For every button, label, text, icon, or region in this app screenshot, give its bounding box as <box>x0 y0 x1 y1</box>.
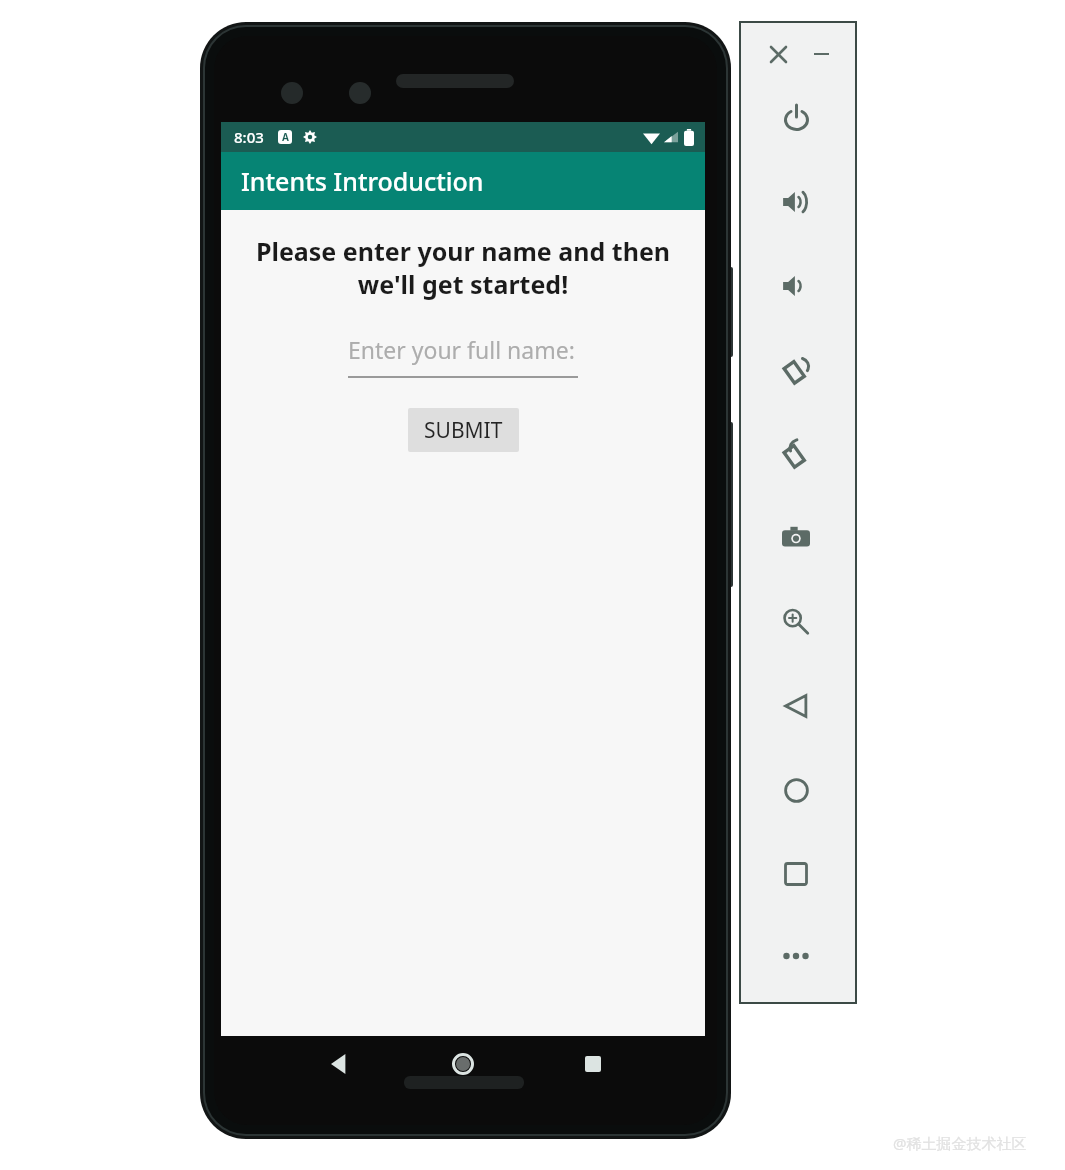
button[interactable]: Back <box>774 684 818 728</box>
button[interactable]: Rotate right <box>774 432 818 476</box>
button[interactable]: SUBMIT <box>408 408 519 452</box>
button[interactable]: Take screenshot <box>774 516 818 560</box>
button[interactable]: Enter your full name: <box>348 334 578 378</box>
button[interactable]: More <box>774 934 818 978</box>
button[interactable]: Volume down <box>774 264 818 308</box>
button[interactable]: Recent apps <box>571 1042 615 1086</box>
staticText: Please enter your name and then we'll ge… <box>237 234 689 301</box>
staticText: @稀土掘金技术社区 <box>893 1133 1027 1153</box>
button[interactable]: Back <box>317 1042 361 1086</box>
button[interactable]: Overview <box>774 852 818 896</box>
button[interactable]: Home <box>774 768 818 812</box>
button[interactable]: Rotate left <box>774 348 818 392</box>
button[interactable]: Minimize <box>805 38 837 70</box>
button[interactable]: Volume up <box>774 180 818 224</box>
staticText: Intents Introduction <box>241 164 484 198</box>
button[interactable]: Zoom <box>774 600 818 644</box>
button[interactable]: Power <box>774 96 818 140</box>
button[interactable]: Close <box>762 38 794 70</box>
staticText: Enter your full name: <box>348 334 575 365</box>
staticText: 8:03 <box>234 127 264 147</box>
staticText: SUBMIT <box>424 416 503 445</box>
button[interactable]: Home <box>441 1042 485 1086</box>
staticText: A <box>282 130 289 144</box>
